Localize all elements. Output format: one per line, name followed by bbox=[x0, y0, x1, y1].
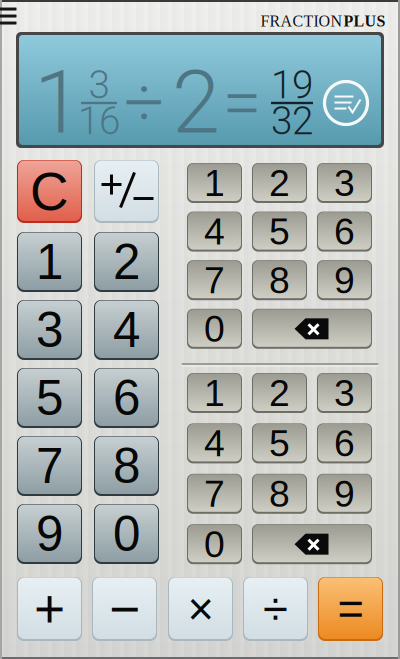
staticText: 32 bbox=[271, 98, 313, 144]
staticText: 2 bbox=[113, 234, 140, 289]
button[interactable]: 5 bbox=[252, 212, 307, 252]
button[interactable]: 0 bbox=[187, 309, 242, 349]
staticText: + bbox=[34, 579, 65, 639]
staticText: PLUS bbox=[343, 12, 385, 30]
button[interactable]: 4 bbox=[94, 300, 159, 360]
staticText: 2 bbox=[269, 372, 290, 414]
button[interactable]: 0 bbox=[187, 524, 242, 564]
staticText: 8 bbox=[113, 438, 140, 493]
staticText: 2 bbox=[172, 52, 220, 154]
button[interactable]: − bbox=[92, 577, 157, 641]
staticText: 8 bbox=[269, 259, 290, 301]
button[interactable]: 5 bbox=[17, 368, 82, 428]
button[interactable]: 6 bbox=[317, 212, 372, 252]
button[interactable]: 9 bbox=[317, 474, 372, 514]
staticText: 6 bbox=[334, 422, 355, 464]
button[interactable]: 3 bbox=[317, 163, 372, 203]
button[interactable]: 7 bbox=[17, 436, 82, 496]
staticText: ÷ bbox=[124, 61, 164, 143]
button[interactable]: 0 bbox=[94, 504, 159, 564]
staticText: 7 bbox=[204, 259, 225, 301]
staticText: 2 bbox=[269, 162, 290, 204]
staticText: × bbox=[187, 584, 213, 634]
staticText: 5 bbox=[269, 211, 290, 252]
staticText: 1 bbox=[204, 162, 225, 204]
button[interactable]: 1 bbox=[187, 163, 242, 203]
staticText: 3 bbox=[36, 302, 63, 357]
button[interactable]: 7 bbox=[187, 474, 242, 514]
staticText: 1 bbox=[34, 52, 82, 154]
staticText: 9 bbox=[36, 506, 63, 561]
staticText: 4 bbox=[204, 422, 225, 464]
button[interactable]: 9 bbox=[17, 504, 82, 564]
staticText: − bbox=[109, 579, 140, 639]
staticText: ÷ bbox=[263, 584, 288, 634]
staticText: 0 bbox=[204, 308, 225, 350]
staticText: 8 bbox=[269, 473, 290, 515]
button[interactable]: 8 bbox=[252, 474, 307, 514]
button[interactable]: ÷ bbox=[243, 577, 308, 641]
button[interactable]: Toggle sign bbox=[94, 160, 159, 223]
staticText: FRACTION bbox=[260, 12, 342, 30]
staticText: 16 bbox=[78, 98, 120, 144]
staticText: 7 bbox=[204, 473, 225, 515]
staticText: 3 bbox=[88, 62, 109, 108]
staticText: 4 bbox=[113, 302, 140, 357]
button[interactable]: Backspace bbox=[252, 309, 372, 349]
staticText: 0 bbox=[113, 506, 140, 561]
button[interactable]: 2 bbox=[94, 232, 159, 292]
button[interactable]: 3 bbox=[317, 373, 372, 413]
button[interactable]: × bbox=[168, 577, 233, 641]
staticText: = bbox=[222, 61, 261, 143]
staticText: 9 bbox=[334, 259, 355, 301]
staticText: C bbox=[30, 162, 69, 221]
button[interactable]: 4 bbox=[187, 423, 242, 463]
button[interactable]: 6 bbox=[94, 368, 159, 428]
staticText: 6 bbox=[113, 370, 140, 425]
staticText: 7 bbox=[36, 438, 63, 493]
staticText: 1 bbox=[36, 234, 63, 289]
button[interactable]: History bbox=[324, 81, 367, 124]
button[interactable]: 8 bbox=[252, 260, 307, 300]
staticText: 9 bbox=[334, 473, 355, 515]
staticText: 5 bbox=[36, 370, 63, 425]
staticText: 0 bbox=[204, 523, 225, 565]
button[interactable]: 2 bbox=[252, 163, 307, 203]
button[interactable]: 2 bbox=[252, 373, 307, 413]
button[interactable]: C bbox=[17, 160, 82, 223]
button[interactable]: 1 bbox=[17, 232, 82, 292]
staticText: = bbox=[337, 584, 363, 634]
staticText: 5 bbox=[269, 422, 290, 464]
button[interactable]: 8 bbox=[94, 436, 159, 496]
staticText: 3 bbox=[334, 372, 355, 414]
button[interactable]: 3 bbox=[17, 300, 82, 360]
button[interactable]: 1 bbox=[187, 373, 242, 413]
button[interactable]: Menu bbox=[0, 4, 21, 28]
staticText: 1 bbox=[204, 372, 225, 414]
button[interactable]: = bbox=[318, 577, 383, 641]
staticText: 3 bbox=[334, 162, 355, 204]
button[interactable]: 7 bbox=[187, 260, 242, 300]
button[interactable]: Backspace bbox=[252, 524, 372, 564]
button[interactable]: 6 bbox=[317, 423, 372, 463]
button[interactable]: + bbox=[17, 577, 82, 641]
staticText: 4 bbox=[204, 211, 225, 252]
staticText: 6 bbox=[334, 211, 355, 252]
button[interactable]: 9 bbox=[317, 260, 372, 300]
staticText: 19 bbox=[271, 62, 313, 108]
button[interactable]: 5 bbox=[252, 423, 307, 463]
button[interactable]: 4 bbox=[187, 212, 242, 252]
